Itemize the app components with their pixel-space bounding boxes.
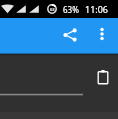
- staticText: 63%: [63, 4, 79, 15]
- button[interactable]: Share: [53, 18, 86, 51]
- button[interactable]: More options: [86, 18, 118, 50]
- staticText: 63: [50, 7, 55, 12]
- staticText: 11:06: [85, 3, 109, 15]
- button[interactable]: Paste: [94, 68, 112, 86]
